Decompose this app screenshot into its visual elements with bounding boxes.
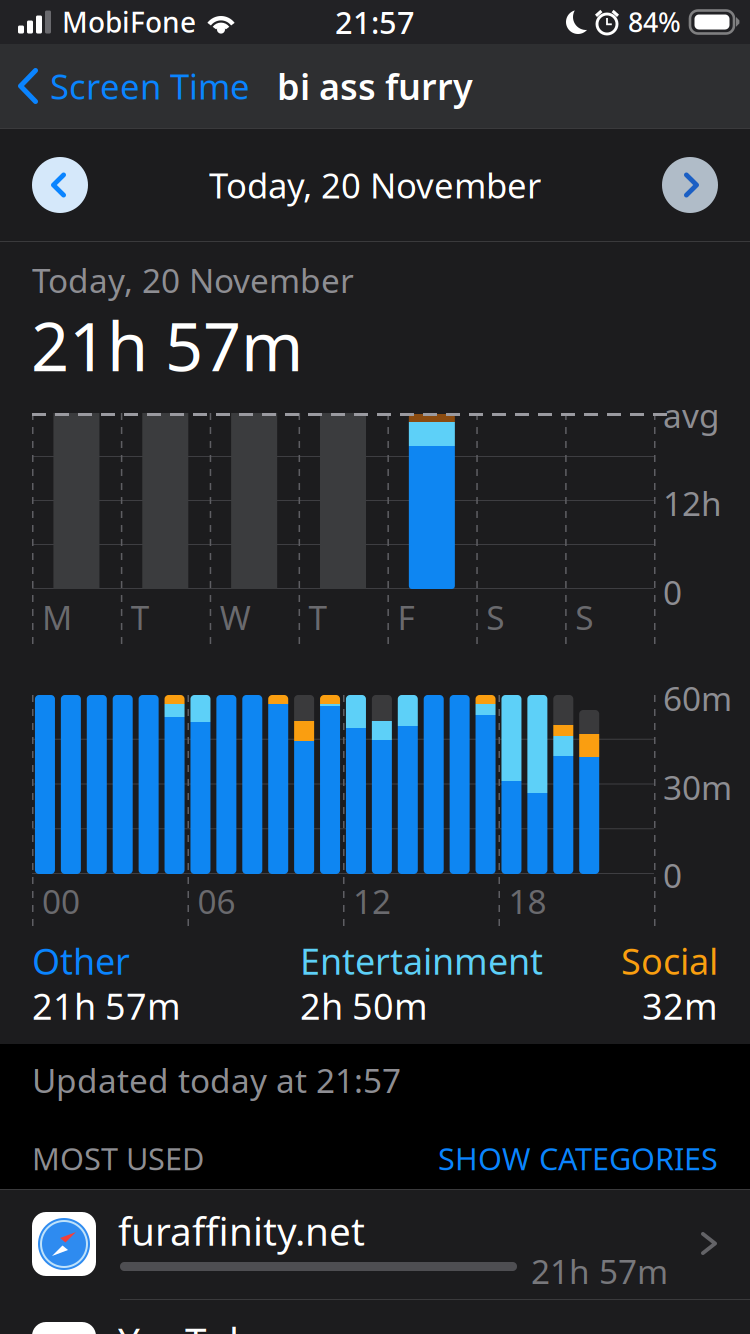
staticText: avg xyxy=(663,393,720,437)
button[interactable]: SHOW CATEGORIES xyxy=(0,1138,718,1179)
staticText: M xyxy=(42,595,72,639)
staticText: S xyxy=(575,595,593,639)
staticText: 12 xyxy=(353,879,391,923)
staticText: 60m xyxy=(663,676,732,720)
staticText: T xyxy=(131,595,150,639)
staticText: YouTube xyxy=(118,1315,275,1334)
staticText: 30m xyxy=(663,765,732,809)
staticText: Screen Time xyxy=(50,63,250,109)
staticText: Entertainment xyxy=(300,937,543,985)
staticText: MOST USED xyxy=(32,1138,204,1179)
staticText: Social xyxy=(621,937,718,985)
staticText: 0 xyxy=(663,853,682,897)
button[interactable]: Previous day xyxy=(32,157,88,213)
staticText: T xyxy=(309,595,328,639)
staticText: 84% xyxy=(628,4,681,40)
staticText: W xyxy=(220,595,251,639)
staticText: Other xyxy=(32,937,130,985)
button[interactable]: furaffinity.net xyxy=(0,1190,750,1300)
button[interactable]: YouTube xyxy=(0,1300,750,1334)
staticText: S xyxy=(486,595,504,639)
staticText: 0 xyxy=(663,570,682,614)
staticText: F xyxy=(397,595,414,639)
staticText: 18 xyxy=(508,879,546,923)
staticText: SHOW CATEGORIES xyxy=(438,1138,718,1179)
staticText: 2h 50m xyxy=(300,982,428,1030)
staticText: 21h 57m xyxy=(531,1249,668,1293)
staticText: MobiFone xyxy=(62,3,196,41)
staticText: Today, 20 November xyxy=(32,258,354,302)
staticText: 21:57 xyxy=(335,2,415,42)
staticText: bi ass furry xyxy=(277,62,473,110)
staticText: 06 xyxy=(197,879,235,923)
staticText: 00 xyxy=(42,879,80,923)
staticText: furaffinity.net xyxy=(118,1205,365,1256)
staticText: 21h 57m xyxy=(32,982,181,1030)
staticText: 12h xyxy=(663,481,722,525)
staticText: Updated today at 21:57 xyxy=(32,1058,401,1102)
staticText: Today, 20 November xyxy=(209,162,541,208)
staticText: 32m xyxy=(642,982,718,1030)
button[interactable]: Screen Time xyxy=(0,44,264,128)
button[interactable]: Next day xyxy=(662,157,718,213)
staticText: 21h 57m xyxy=(31,301,303,389)
